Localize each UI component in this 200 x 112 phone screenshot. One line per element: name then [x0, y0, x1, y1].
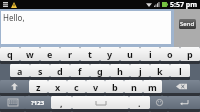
staticText: d	[57, 65, 63, 77]
button[interactable]: y	[100, 47, 120, 64]
staticText: 5:57 pm	[170, 0, 198, 9]
staticText: g	[97, 65, 103, 77]
button[interactable]: .	[129, 96, 150, 112]
button[interactable]: b	[105, 80, 124, 96]
button[interactable]: Enter	[168, 96, 200, 112]
button[interactable]: ?123	[25, 96, 51, 112]
staticText: Hello,	[3, 12, 25, 23]
button[interactable]: q	[0, 47, 20, 64]
button[interactable]: l	[170, 64, 190, 80]
staticText: t	[88, 48, 92, 60]
button[interactable]: i	[140, 47, 160, 64]
staticText: m	[148, 81, 157, 93]
staticText: w	[26, 48, 34, 60]
staticText: q	[7, 48, 13, 60]
staticText: b	[112, 81, 118, 93]
button[interactable]: Emoji	[150, 96, 168, 112]
staticText: o	[167, 48, 173, 60]
button[interactable]: d	[50, 64, 70, 80]
staticText: a	[17, 65, 23, 77]
staticText: Send	[180, 20, 195, 28]
staticText: z	[36, 81, 41, 93]
staticText: j	[139, 65, 142, 77]
button[interactable]: s	[30, 64, 50, 80]
staticText: l	[179, 65, 182, 77]
button[interactable]: m	[143, 80, 162, 96]
button[interactable]: n	[124, 80, 143, 96]
button[interactable]: r	[60, 47, 80, 64]
staticText: h	[117, 65, 123, 77]
button[interactable]: Backspace	[162, 80, 200, 96]
staticText: ?123	[31, 99, 45, 107]
staticText: u	[127, 48, 133, 60]
staticText: f	[78, 65, 82, 77]
button[interactable]: x	[48, 80, 67, 96]
staticText: x	[55, 81, 61, 93]
staticText: n	[131, 81, 137, 93]
button[interactable]: Space	[72, 96, 129, 112]
button[interactable]: z	[29, 80, 48, 96]
button[interactable]: ,	[51, 96, 72, 112]
button[interactable]: Shift	[0, 80, 29, 96]
staticText: p	[187, 48, 193, 60]
button[interactable]: f	[70, 64, 90, 80]
button[interactable]: a	[10, 64, 30, 80]
button[interactable]: u	[120, 47, 140, 64]
button[interactable]: j	[130, 64, 150, 80]
button[interactable]: Hello,	[1, 11, 171, 44]
staticText: r	[68, 48, 73, 60]
staticText: k	[157, 65, 163, 77]
button[interactable]: v	[86, 80, 105, 96]
staticText: .	[138, 97, 141, 109]
staticText: c	[74, 81, 79, 93]
button[interactable]: k	[150, 64, 170, 80]
staticText: y	[107, 48, 113, 60]
button[interactable]: t	[80, 47, 100, 64]
button[interactable]: p	[180, 47, 200, 64]
button[interactable]: o	[160, 47, 180, 64]
button[interactable]: c	[67, 80, 86, 96]
button[interactable]: e	[40, 47, 60, 64]
button[interactable]: Switch keyboard	[0, 96, 25, 112]
staticText: e	[47, 48, 53, 60]
staticText: v	[93, 81, 99, 93]
button[interactable]: h	[110, 64, 130, 80]
staticText: ,	[60, 97, 63, 109]
button[interactable]: g	[90, 64, 110, 80]
button[interactable]: w	[20, 47, 40, 64]
staticText: i	[149, 48, 152, 60]
staticText: s	[38, 65, 43, 77]
button[interactable]: Send	[179, 19, 196, 29]
